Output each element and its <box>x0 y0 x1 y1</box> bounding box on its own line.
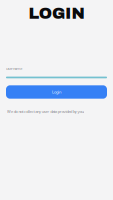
staticText: LOGIN <box>28 5 85 22</box>
staticText: Login <box>52 89 61 95</box>
button[interactable]: Login <box>6 85 107 99</box>
staticText: We do not collect any user data provided… <box>7 109 84 114</box>
staticText: username <box>6 66 22 71</box>
